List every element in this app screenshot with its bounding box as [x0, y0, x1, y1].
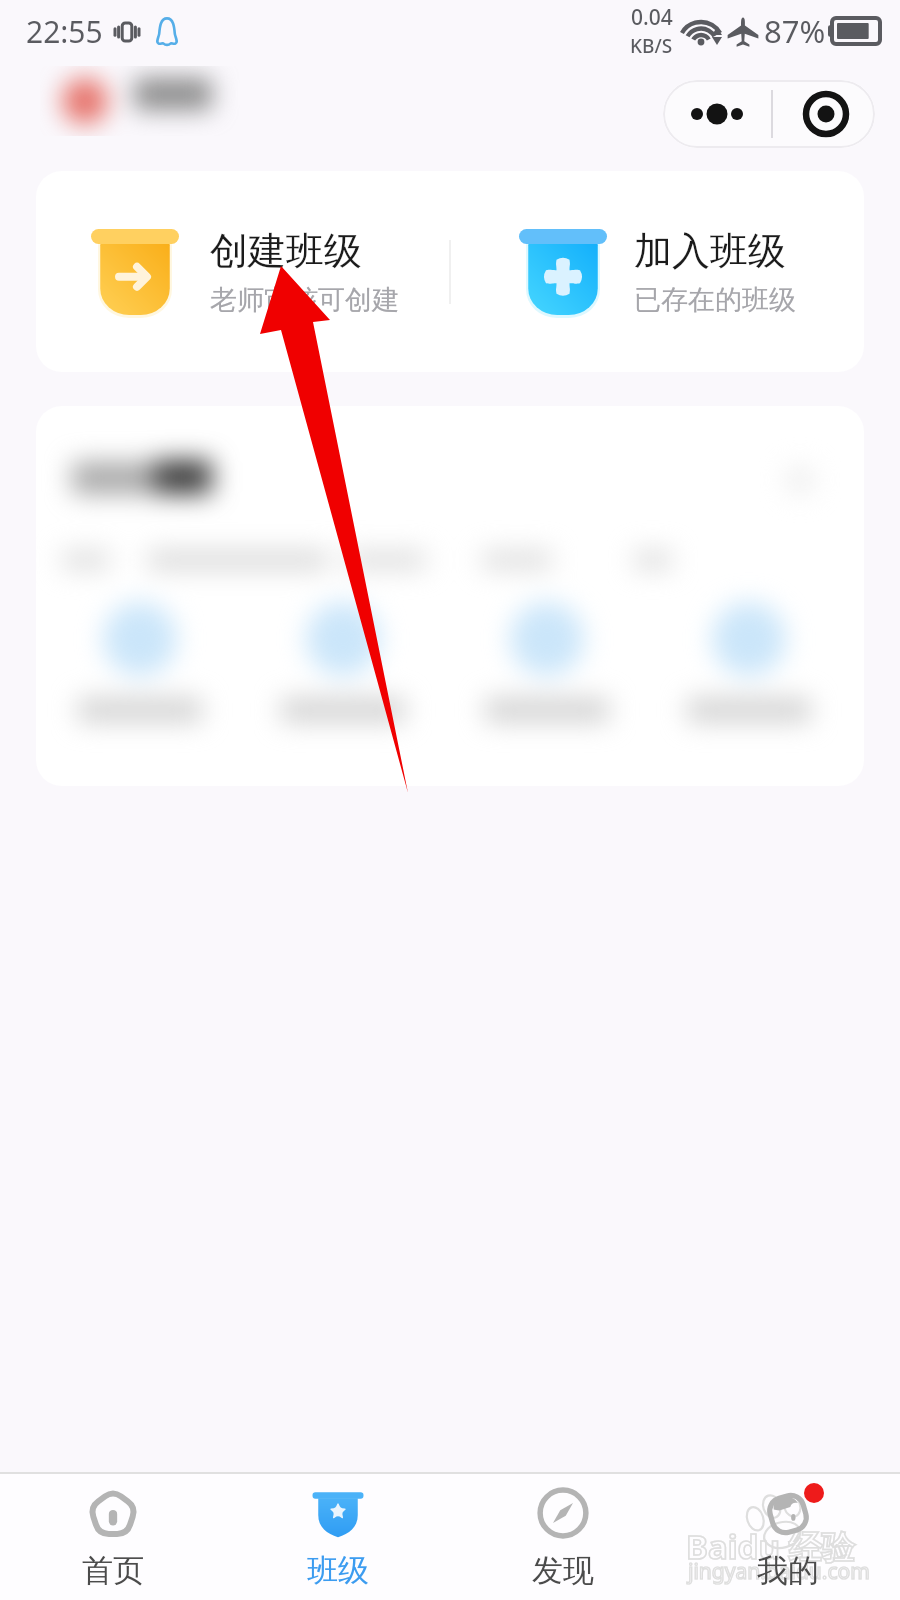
- button[interactable]: 发现: [450, 1474, 675, 1590]
- button[interactable]: 我的: [675, 1474, 900, 1590]
- staticText: 发现: [532, 1551, 594, 1590]
- button[interactable]: More options: [663, 80, 771, 148]
- staticText: 87%: [764, 10, 826, 52]
- staticText: 0.04: [631, 3, 673, 32]
- staticText: jingyan.baidu.com: [688, 1557, 870, 1586]
- button[interactable]: 加入班级: [451, 171, 864, 372]
- staticText: 22:55: [26, 11, 103, 52]
- staticText: 我的: [757, 1551, 819, 1590]
- staticText: 首页: [82, 1551, 144, 1590]
- button[interactable]: Close mini program: [773, 80, 875, 148]
- staticText: KB/S: [630, 33, 673, 59]
- staticText: 老师审核可创建: [210, 283, 399, 317]
- staticText: 创建班级: [210, 227, 362, 275]
- staticText: 已存在的班级: [634, 283, 796, 317]
- staticText: 加入班级: [634, 227, 786, 275]
- button[interactable]: 首页: [0, 1474, 225, 1590]
- staticText: Baidu 经验: [686, 1524, 855, 1569]
- button[interactable]: 创建班级: [36, 171, 449, 372]
- button[interactable]: 班级: [225, 1474, 450, 1590]
- staticText: 班级: [307, 1551, 369, 1590]
